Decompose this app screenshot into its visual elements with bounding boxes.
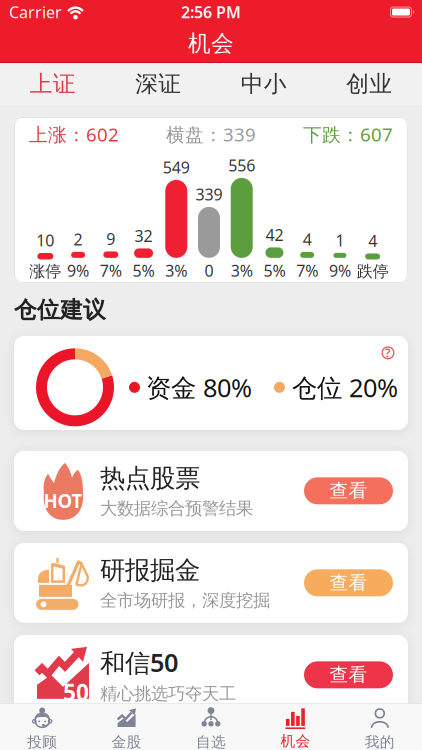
staticText: Carrier — [9, 1, 62, 23]
staticText: 2:56 PM — [181, 1, 241, 23]
button[interactable]: 机会 — [253, 707, 338, 750]
staticText: 0 — [204, 260, 213, 281]
staticText: 横盘：339 — [166, 122, 256, 147]
staticText: 上证 — [30, 70, 76, 98]
button[interactable]: 投顾 — [0, 706, 84, 750]
staticText: 549 — [163, 157, 190, 178]
staticText: 9% — [329, 260, 351, 281]
staticText: 556 — [228, 155, 255, 176]
staticText: 机会 — [188, 30, 234, 57]
staticText: 自选 — [196, 733, 226, 750]
staticText: 金股 — [112, 733, 142, 750]
button[interactable]: 我的 — [338, 706, 422, 750]
staticText: 42 — [265, 224, 283, 245]
staticText: 9% — [67, 260, 89, 281]
staticText: 1 — [335, 230, 344, 251]
staticText: 5% — [132, 260, 154, 281]
staticText: 研报掘金 — [100, 555, 200, 586]
staticText: 查看 — [329, 571, 367, 594]
button[interactable]: 深证 — [105, 70, 211, 98]
button[interactable]: 上证 — [0, 70, 105, 98]
staticText: 中小 — [241, 70, 287, 98]
staticText: 4 — [368, 230, 377, 251]
staticText: 3% — [165, 260, 187, 281]
staticText: 下跌：607 — [303, 122, 393, 147]
button[interactable]: 帮助 — [376, 341, 400, 365]
staticText: 50 — [63, 677, 89, 707]
button[interactable]: 查看 — [304, 661, 393, 688]
staticText: 9 — [106, 228, 115, 249]
button[interactable]: 中小 — [211, 70, 316, 98]
staticText: 7% — [100, 260, 122, 281]
staticText: 投顾 — [27, 733, 57, 750]
staticText: 仓位建议 — [14, 296, 106, 324]
button[interactable]: 查看 — [304, 569, 393, 596]
staticText: 仓位 20% — [292, 370, 398, 404]
staticText: 3% — [231, 260, 253, 281]
staticText: 4 — [303, 229, 312, 250]
staticText: 深证 — [135, 70, 181, 98]
staticText: 10 — [36, 230, 54, 251]
staticText: 涨停 — [29, 261, 61, 281]
button[interactable]: HOT — [14, 451, 408, 531]
button[interactable]: 研报掘金 — [14, 543, 408, 623]
staticText: 5% — [263, 260, 285, 281]
staticText: ? — [385, 345, 391, 361]
staticText: 7% — [296, 260, 318, 281]
staticText: 查看 — [329, 663, 367, 686]
staticText: 我的 — [365, 733, 395, 750]
staticText: 339 — [195, 184, 222, 205]
staticText: 和信50 — [100, 645, 178, 679]
staticText: 资金 80% — [146, 370, 252, 404]
staticText: 精心挑选巧夺天工 — [100, 683, 236, 704]
button[interactable]: 自选 — [169, 706, 253, 750]
button[interactable]: 创业 — [316, 70, 422, 98]
button[interactable]: 50 — [14, 635, 408, 715]
button[interactable]: 查看 — [304, 477, 393, 504]
staticText: 热点股票 — [100, 463, 200, 494]
staticText: 机会 — [280, 732, 310, 750]
staticText: 查看 — [329, 479, 367, 502]
staticText: 跌停 — [357, 261, 389, 281]
button[interactable]: 金股 — [84, 706, 169, 750]
staticText: 上涨：602 — [29, 122, 119, 147]
staticText: 2 — [74, 229, 83, 250]
staticText: 32 — [134, 225, 152, 246]
staticText: 创业 — [346, 70, 392, 98]
staticText: HOT — [43, 488, 82, 513]
staticText: 全市场研报，深度挖掘 — [100, 590, 270, 611]
staticText: 大数据综合预警结果 — [100, 498, 253, 519]
